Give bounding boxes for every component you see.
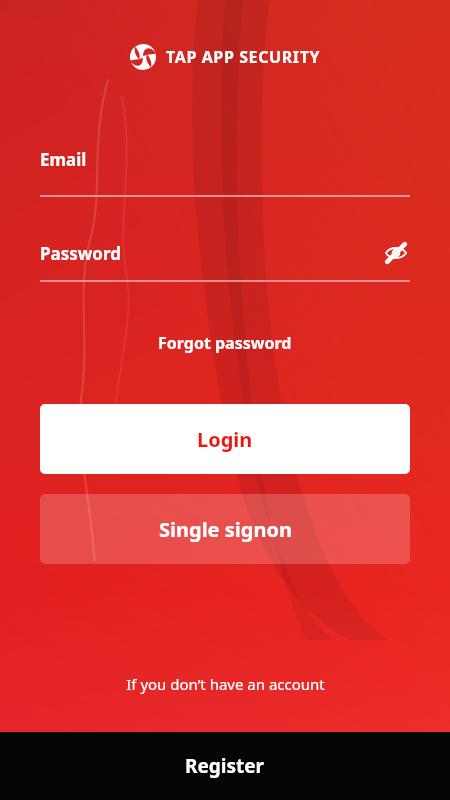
button[interactable]: Forgot password (144, 326, 306, 360)
button[interactable]: Email (0, 148, 450, 197)
staticText: Forgot password (158, 332, 292, 354)
staticText: TAP APP SECURITY (166, 46, 321, 68)
button[interactable]: Login (40, 404, 410, 474)
staticText: Password (40, 242, 121, 265)
staticText: Login (197, 426, 253, 453)
button[interactable]: Show password (382, 239, 410, 267)
staticText: Single signon (159, 516, 292, 543)
button[interactable]: Register (0, 732, 450, 800)
staticText: If you don’t have an account (126, 674, 325, 694)
staticText: Email (40, 148, 87, 171)
staticText: Register (185, 753, 265, 779)
button[interactable]: Password (0, 239, 450, 282)
button[interactable]: Single signon (40, 494, 410, 564)
